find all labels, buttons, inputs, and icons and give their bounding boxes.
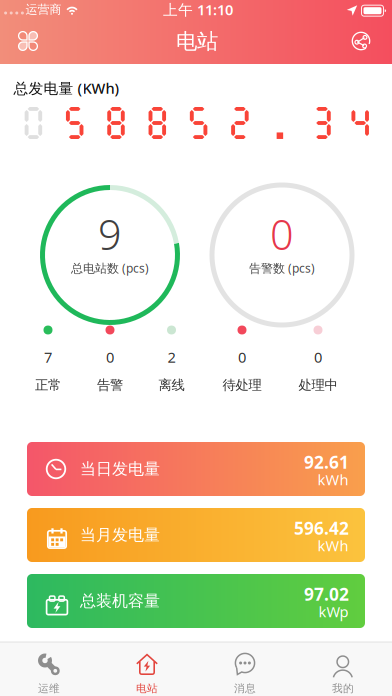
staticText: 596.42 [294,516,349,539]
button[interactable]: 消息 [196,642,294,696]
staticText: 总电站数 (pcs) [71,260,149,276]
button[interactable]: 总装机容量 [27,574,365,628]
staticText: 上午 11:10 [163,0,233,19]
staticText: 当月发电量 [80,525,160,545]
staticText: 7 [44,347,52,367]
staticText: 运维 [38,682,60,695]
button[interactable]: Apps [11,24,45,58]
button[interactable]: 当月发电量 [27,508,365,562]
staticText: 运营商 [25,2,61,17]
staticText: 消息 [234,682,256,695]
button[interactable]: Share [344,24,378,58]
button[interactable]: 当日发电量 [27,442,365,496]
staticText: kWh [317,470,348,489]
staticText: 92.61 [304,450,349,473]
staticText: 处理中 [298,377,337,393]
button[interactable]: 我的 [294,642,392,696]
staticText: 电站 [136,682,158,695]
staticText: 我的 [332,682,354,695]
staticText: 0 [314,347,322,367]
staticText: 0 [238,347,246,367]
staticText: 告警数 (pcs) [249,260,315,276]
staticText: 当日发电量 [80,459,160,479]
button[interactable]: 运维 [0,642,98,696]
button[interactable]: 电站 [98,642,196,696]
staticText: 告警 [97,377,123,393]
staticText: 待处理 [222,377,261,393]
staticText: 正常 [35,377,61,393]
staticText: 电站 [176,28,218,55]
staticText: kWp [318,602,348,621]
staticText: kWh [317,536,348,555]
staticText: 0 [106,347,114,367]
staticText: 97.02 [304,582,349,605]
staticText: 9 [98,207,122,261]
staticText: 离线 [158,377,184,393]
staticText: 2 [167,347,175,367]
staticText: 0 [270,207,294,261]
staticText: 总发电量 (KWh) [13,78,119,98]
staticText: 总装机容量 [80,591,160,611]
